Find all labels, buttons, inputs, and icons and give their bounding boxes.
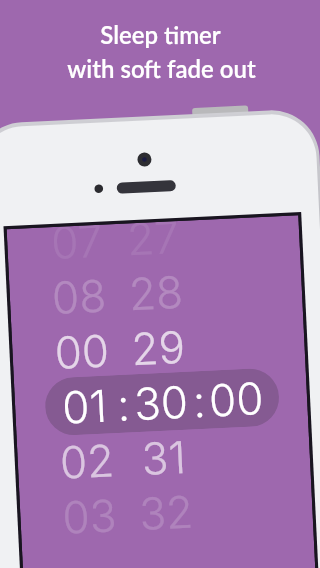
staticText: :	[192, 374, 207, 427]
staticText: with soft fade out	[67, 54, 256, 83]
staticText: 28	[128, 265, 184, 320]
staticText: :	[116, 377, 131, 431]
button[interactable]	[44, 367, 280, 436]
staticText: 00	[53, 323, 111, 379]
staticText: 29	[130, 320, 187, 375]
staticText: 07	[51, 225, 104, 269]
staticText: 30	[133, 375, 189, 430]
staticText: 08	[51, 268, 108, 324]
staticText: 00	[208, 371, 265, 427]
staticText: 32	[138, 485, 195, 540]
staticText: 27	[126, 221, 180, 265]
staticText: 01	[61, 379, 108, 434]
staticText: 03	[61, 488, 118, 544]
staticText: 31	[140, 430, 187, 485]
staticText: 02	[59, 433, 116, 489]
staticText: Sleep timer	[100, 20, 221, 49]
